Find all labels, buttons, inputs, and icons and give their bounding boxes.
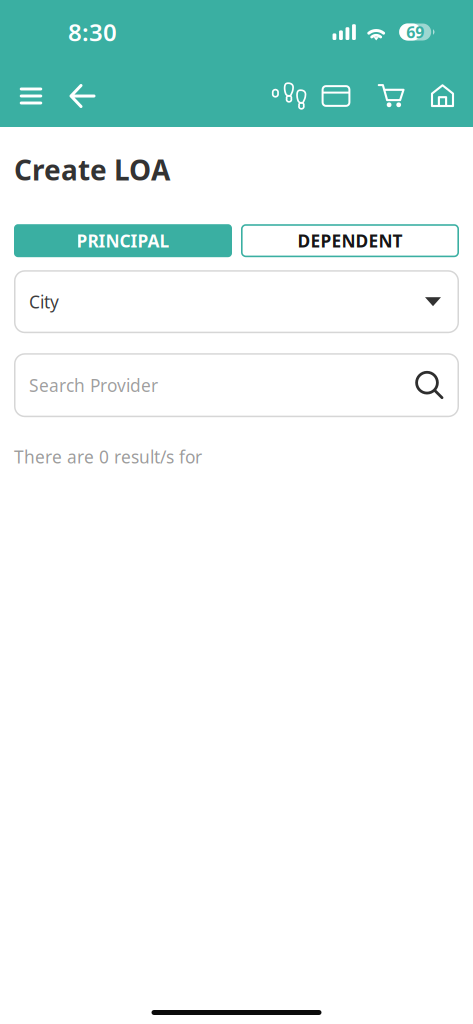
- staticText: Search Provider: [29, 374, 158, 397]
- button[interactable]: Search Provider: [14, 353, 459, 417]
- button[interactable]: PRINCIPAL: [14, 224, 232, 257]
- button[interactable]: Home: [420, 74, 465, 118]
- staticText: 8:30: [68, 16, 117, 48]
- staticText: There are 0 result/s for: [14, 445, 202, 468]
- button[interactable]: Cart: [363, 74, 420, 118]
- staticText: Create LOA: [14, 151, 170, 188]
- button[interactable]: Menu: [11, 74, 51, 118]
- button[interactable]: City: [14, 270, 459, 333]
- staticText: 69: [406, 21, 424, 43]
- button[interactable]: Cards: [309, 74, 363, 118]
- button[interactable]: DEPENDENT: [241, 224, 459, 257]
- button[interactable]: Back: [60, 74, 104, 118]
- button[interactable]: Activity: [269, 74, 309, 118]
- staticText: City: [29, 290, 59, 313]
- staticText: DEPENDENT: [297, 229, 402, 252]
- staticText: PRINCIPAL: [76, 229, 169, 252]
